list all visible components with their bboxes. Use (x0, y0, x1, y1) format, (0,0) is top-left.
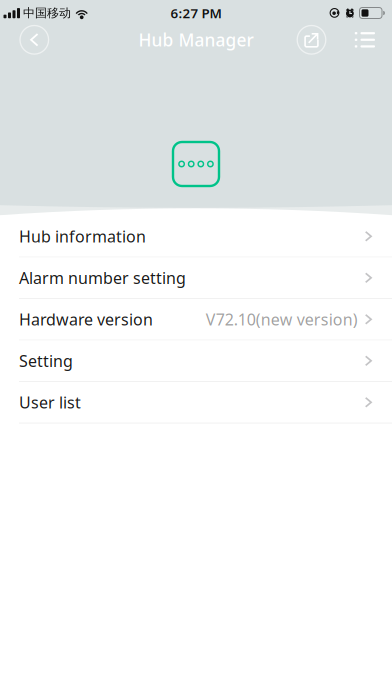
button[interactable]: Hub information (0, 216, 392, 257)
button[interactable]: User list (0, 382, 392, 423)
staticText: 中国移动 (23, 6, 71, 20)
staticText: Hardware version (19, 309, 153, 330)
staticText: Hub Manager (138, 28, 253, 51)
staticText: Alarm number setting (19, 267, 186, 288)
button[interactable]: Menu (355, 25, 375, 54)
staticText: 6:27 PM (170, 4, 221, 22)
button[interactable]: Setting (0, 340, 392, 382)
staticText: Setting (19, 350, 73, 371)
button[interactable]: Alarm number setting (0, 257, 392, 299)
button[interactable]: Share (297, 25, 326, 54)
button[interactable]: Hardware version (0, 299, 392, 340)
button[interactable]: Back (20, 25, 49, 54)
staticText: V72.10(new version) (206, 309, 358, 330)
staticText: Hub information (19, 226, 146, 247)
staticText: User list (19, 392, 81, 413)
